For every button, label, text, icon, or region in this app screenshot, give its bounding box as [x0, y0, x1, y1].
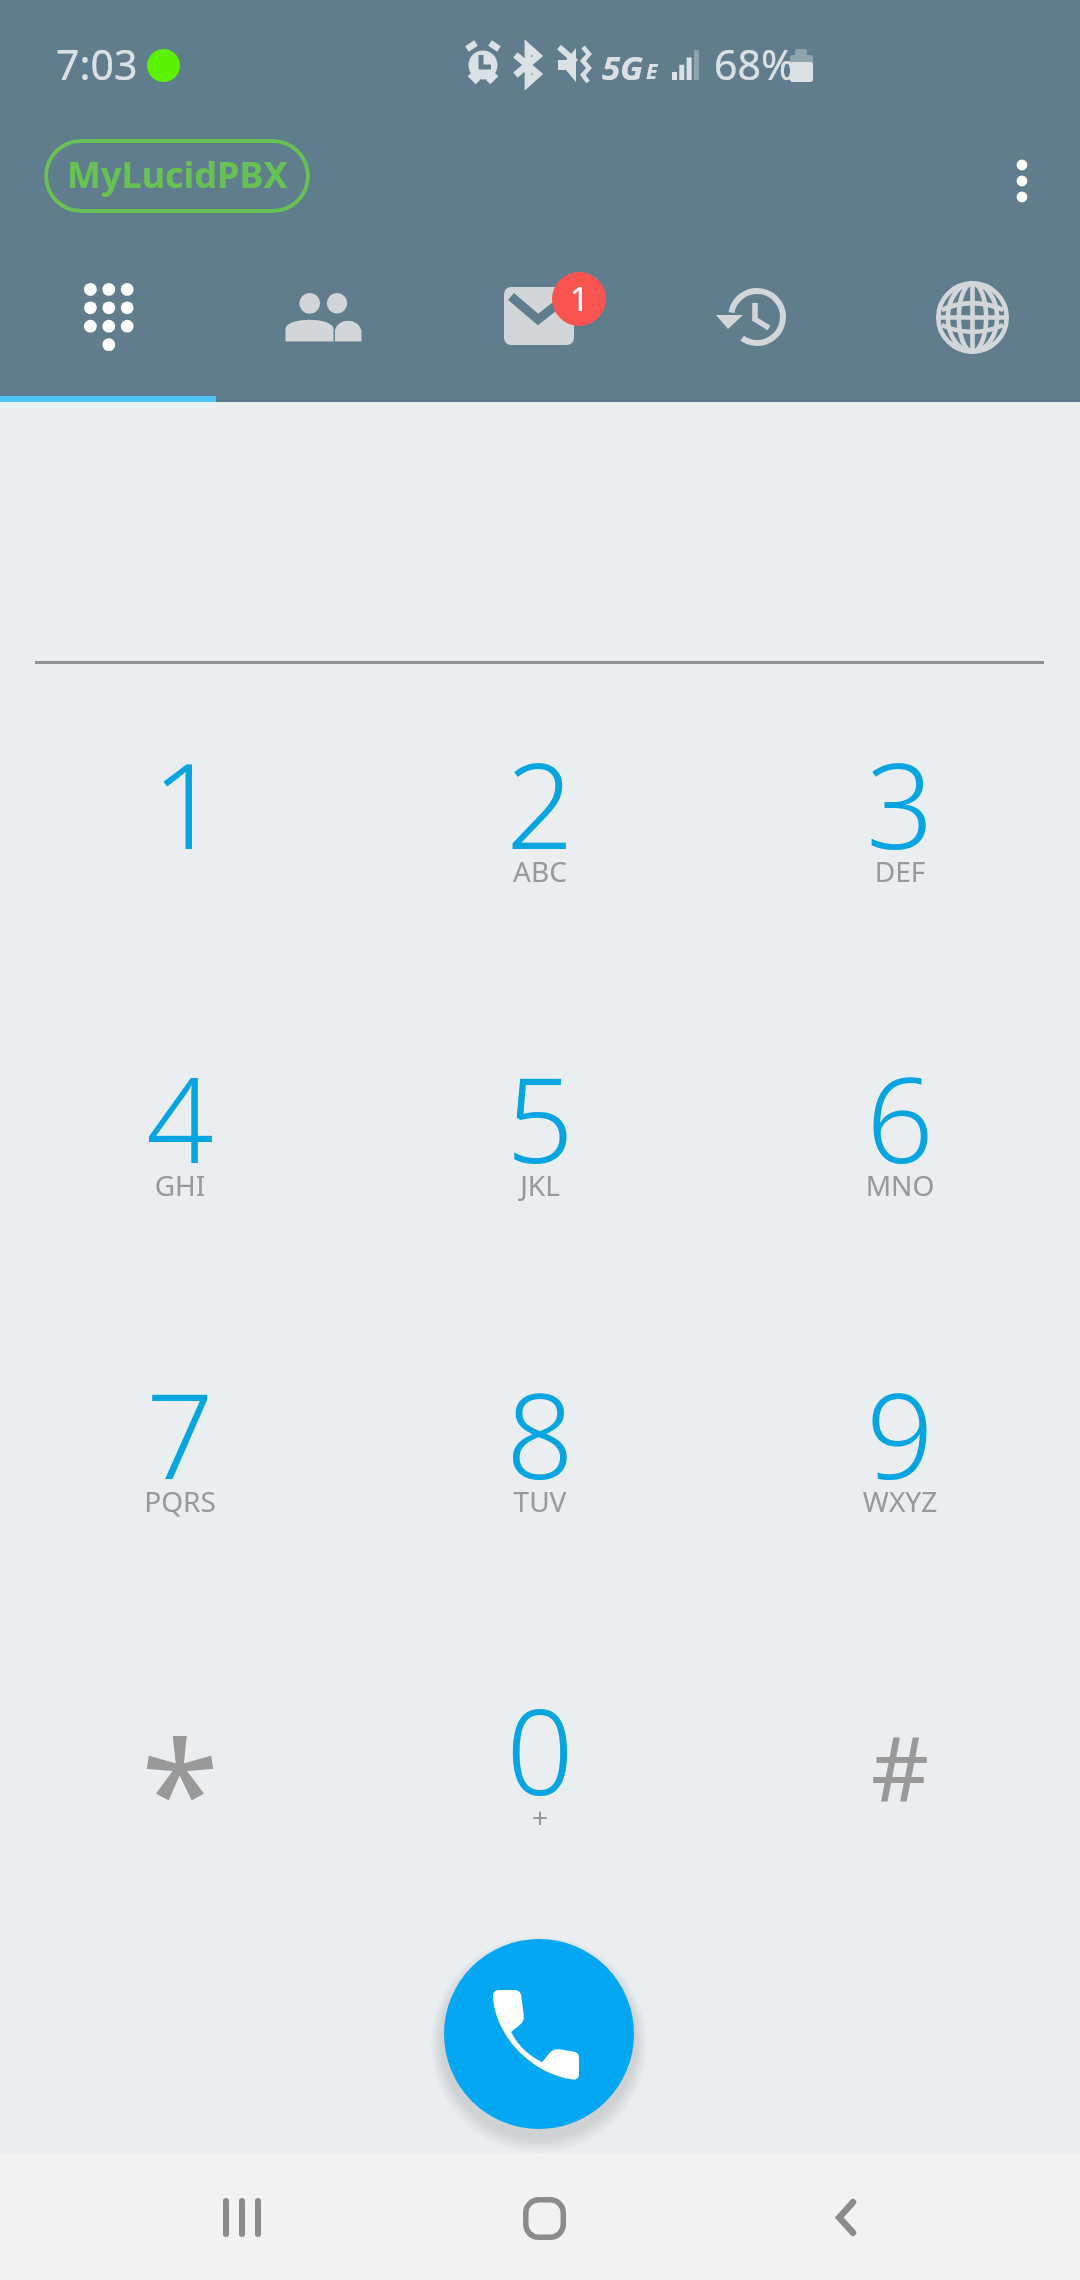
button[interactable]: 9 — [720, 1253, 1080, 1553]
button[interactable]: 5 — [360, 937, 720, 1237]
staticText: 1 — [6, 723, 366, 884]
staticText: MNO — [720, 1166, 1080, 1204]
button[interactable]: Call — [444, 1939, 634, 2129]
button[interactable]: Web — [864, 243, 1080, 391]
button[interactable]: Call history — [648, 243, 864, 391]
button[interactable]: More options — [982, 139, 1062, 223]
staticText: 3 — [720, 723, 1080, 884]
staticText: 5 — [360, 1037, 720, 1198]
button[interactable]: 1 — [6, 623, 366, 923]
staticText: 1 — [570, 276, 589, 321]
button[interactable]: MyLucidPBX — [44, 139, 310, 213]
staticText: 6 — [720, 1037, 1080, 1198]
staticText: * — [0, 1693, 360, 1886]
button[interactable]: 6 — [720, 937, 1080, 1237]
staticText: 2 — [360, 723, 720, 884]
button[interactable]: 4 — [0, 937, 360, 1237]
button[interactable]: 0 — [360, 1569, 720, 1869]
staticText: E — [646, 57, 658, 86]
staticText: 7:03 — [56, 36, 138, 92]
button[interactable]: * — [0, 1569, 360, 1869]
button[interactable]: Contacts — [216, 243, 432, 391]
staticText: 9 — [720, 1353, 1080, 1514]
button[interactable]: 2 — [360, 623, 720, 923]
staticText: TUV — [360, 1482, 720, 1520]
staticText: 8 — [360, 1353, 720, 1514]
button[interactable]: Home — [484, 2155, 604, 2279]
staticText: 7 — [0, 1353, 360, 1514]
button[interactable]: 3 — [720, 623, 1080, 923]
staticText: 4 — [0, 1037, 360, 1198]
button[interactable]: Dialpad — [0, 243, 216, 391]
staticText: WXYZ — [720, 1482, 1080, 1520]
button[interactable]: Back — [786, 2155, 906, 2279]
button[interactable]: Messages — [432, 243, 648, 391]
button[interactable]: 8 — [360, 1253, 720, 1553]
button[interactable]: # — [720, 1569, 1080, 1869]
staticText: PQRS — [0, 1482, 360, 1520]
staticText: + — [360, 1798, 720, 1836]
staticText: JKL — [360, 1166, 720, 1204]
staticText: GHI — [0, 1166, 360, 1204]
button[interactable]: 7 — [0, 1253, 360, 1553]
staticText: 0 — [360, 1669, 720, 1830]
button[interactable]: Recent apps — [181, 2155, 301, 2279]
staticText: 5G — [602, 45, 643, 90]
staticText: 68% — [714, 36, 795, 92]
staticText: MyLucidPBX — [67, 150, 288, 199]
staticText: ABC — [360, 852, 720, 890]
staticText: # — [720, 1706, 1080, 1829]
staticText: DEF — [720, 852, 1080, 890]
